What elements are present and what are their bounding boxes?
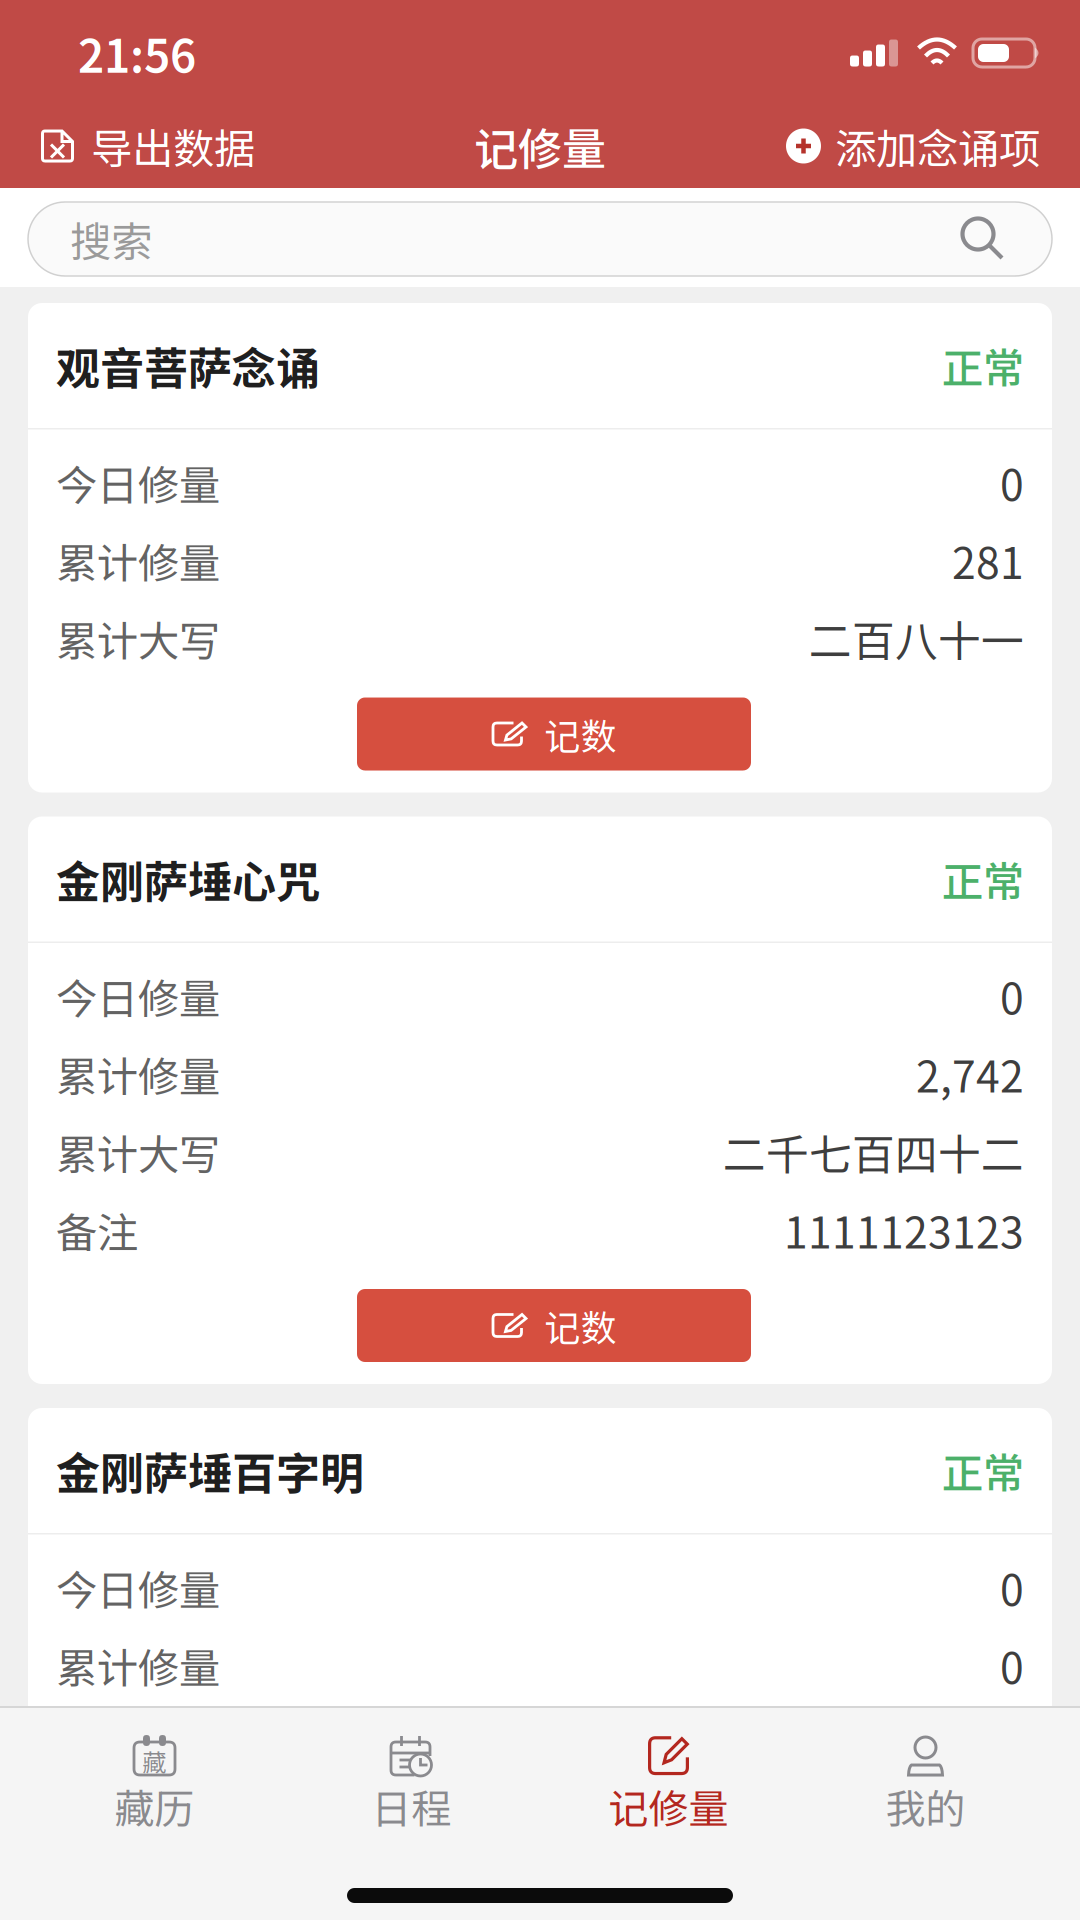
staticText: 记数 — [544, 708, 616, 760]
button[interactable]: 记数 — [357, 1289, 751, 1362]
staticText: 2,742 — [916, 1043, 1024, 1105]
staticText: 累计大写 — [56, 609, 220, 668]
button[interactable]: 导出数据 — [34, 104, 261, 188]
button[interactable]: 记数 — [357, 697, 751, 770]
button[interactable]: 搜索 — [28, 202, 1052, 276]
staticText: 今日修量 — [56, 1558, 220, 1617]
staticText: 备注 — [56, 1200, 138, 1260]
staticText: 正常 — [942, 1441, 1024, 1500]
staticText: 累计大写 — [56, 1714, 220, 1773]
staticText: 今日修量 — [56, 966, 220, 1026]
staticText: 二千七百四十二 — [723, 1121, 1024, 1183]
staticText: 观音菩萨念诵 — [56, 334, 320, 397]
staticText: 21:56 — [78, 20, 196, 86]
staticText: 0 — [1000, 1635, 1024, 1696]
staticText: 藏历 — [114, 1777, 194, 1835]
staticText: 日程 — [371, 1777, 451, 1835]
staticText: 添加念诵项 — [835, 116, 1040, 176]
staticText: 金刚萨埵心咒 — [56, 847, 320, 911]
staticText: 我的 — [885, 1777, 965, 1835]
button[interactable]: 日程 — [283, 1708, 540, 1848]
staticText: 金刚萨埵百字明 — [56, 1439, 364, 1502]
staticText: 累计修量 — [56, 531, 220, 590]
staticText: 累计修量 — [56, 1636, 220, 1695]
staticText: 记数 — [544, 1813, 616, 1865]
button[interactable]: 添加念诵项 — [780, 104, 1046, 188]
staticText: 二百八十一 — [809, 608, 1024, 669]
staticText: 0 — [1000, 452, 1024, 513]
staticText: 正常 — [942, 849, 1024, 909]
staticText: 记数 — [544, 1299, 616, 1351]
staticText: 0 — [1000, 1557, 1024, 1618]
staticText: 记修量 — [608, 1777, 728, 1835]
button[interactable]: 我的 — [797, 1708, 1054, 1848]
button[interactable]: 藏 — [26, 1708, 283, 1848]
staticText: 累计大写 — [56, 1122, 220, 1182]
staticText: 0 — [1000, 965, 1024, 1027]
staticText: 藏 — [142, 1744, 166, 1778]
staticText: 搜索 — [70, 209, 152, 269]
staticText: 累计修量 — [56, 1044, 220, 1104]
staticText: 今日修量 — [56, 453, 220, 512]
staticText: 281 — [952, 530, 1024, 591]
button[interactable]: 记修量 — [540, 1708, 797, 1848]
staticText: 记修量 — [474, 114, 606, 178]
button[interactable]: 记数 — [357, 1802, 751, 1875]
staticText: 导出数据 — [91, 116, 255, 176]
staticText: 1111123123 — [784, 1199, 1024, 1261]
staticText: 正常 — [942, 336, 1024, 395]
